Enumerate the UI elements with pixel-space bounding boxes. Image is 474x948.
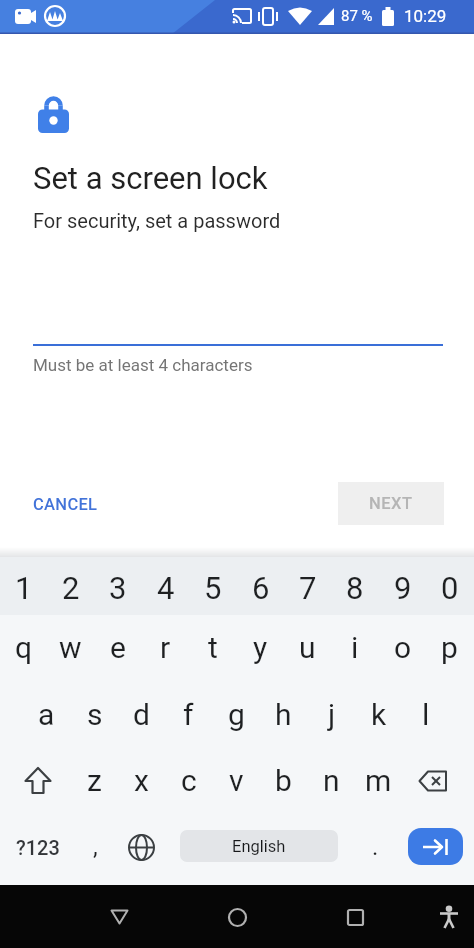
button[interactable]: NEXT <box>338 482 444 525</box>
button[interactable]: m <box>355 749 402 811</box>
button[interactable]: k <box>355 683 402 745</box>
staticText: p <box>441 630 458 665</box>
staticText: 5 <box>204 570 222 606</box>
button[interactable]: j <box>308 683 355 745</box>
staticText: d <box>133 697 150 732</box>
button[interactable]: g <box>213 683 260 745</box>
button[interactable]: i <box>331 616 378 678</box>
button[interactable]: 0 <box>426 562 473 614</box>
button[interactable]: v <box>213 749 260 811</box>
button[interactable]: s <box>71 683 118 745</box>
staticText: a <box>38 697 55 732</box>
staticText: w <box>59 630 82 665</box>
staticText: n <box>323 763 340 798</box>
staticText: 1 <box>15 570 33 606</box>
staticText: f <box>183 697 194 732</box>
staticText: k <box>371 697 387 732</box>
button[interactable]: t <box>189 616 236 678</box>
button[interactable]: f <box>165 683 212 745</box>
staticText: 3 <box>109 570 127 606</box>
button[interactable]: 5 <box>189 562 236 614</box>
button[interactable]: u <box>284 616 331 678</box>
button[interactable]: h <box>260 683 307 745</box>
button[interactable]: English <box>180 830 338 862</box>
staticText: . <box>372 833 379 861</box>
staticText: e <box>110 630 126 665</box>
button[interactable] <box>408 828 463 865</box>
staticText: For security, set a password <box>33 209 281 232</box>
button[interactable]: y <box>237 616 284 678</box>
button[interactable] <box>336 898 374 936</box>
button[interactable]: ?123 <box>10 820 66 875</box>
button[interactable]: 6 <box>237 562 284 614</box>
staticText: c <box>181 763 197 798</box>
button[interactable]: . <box>352 816 399 878</box>
button[interactable]: 7 <box>284 562 331 614</box>
button[interactable] <box>100 898 138 936</box>
staticText: 0 <box>441 570 459 606</box>
staticText: j <box>328 697 336 732</box>
button[interactable]: z <box>71 749 118 811</box>
staticText: Set a screen lock <box>33 160 268 196</box>
button[interactable]: r <box>142 616 189 678</box>
button[interactable]: o <box>379 616 426 678</box>
staticText: 87 % <box>341 7 373 25</box>
staticText: CANCEL <box>33 495 98 514</box>
staticText: z <box>87 763 102 798</box>
button[interactable]: q <box>0 616 47 678</box>
staticText: Must be at least 4 characters <box>33 355 253 375</box>
staticText: s <box>87 697 103 732</box>
button[interactable]: l <box>402 683 449 745</box>
staticText: l <box>422 697 430 732</box>
staticText: b <box>275 763 292 798</box>
staticText: ?123 <box>16 836 60 859</box>
staticText: 6 <box>252 570 270 606</box>
button[interactable]: 2 <box>47 562 94 614</box>
button[interactable]: 3 <box>94 562 141 614</box>
staticText: NEXT <box>369 494 413 513</box>
button[interactable]: c <box>165 749 212 811</box>
button[interactable] <box>430 898 468 936</box>
button[interactable]: b <box>260 749 307 811</box>
staticText: English <box>232 837 286 856</box>
button[interactable]: p <box>426 616 473 678</box>
staticText: , <box>93 833 98 861</box>
staticText: r <box>160 630 171 665</box>
staticText: 9 <box>394 570 412 606</box>
button[interactable]: 9 <box>379 562 426 614</box>
staticText: o <box>394 630 412 665</box>
button[interactable] <box>10 750 65 812</box>
button[interactable]: CANCEL <box>33 486 133 522</box>
staticText: h <box>275 697 292 732</box>
staticText: 2 <box>62 570 80 606</box>
staticText: v <box>229 763 244 798</box>
staticText: 4 <box>157 570 175 606</box>
staticText: q <box>15 630 33 665</box>
button[interactable] <box>118 820 164 875</box>
button[interactable]: a <box>23 683 70 745</box>
button[interactable]: w <box>47 616 94 678</box>
staticText: 7 <box>299 570 317 606</box>
staticText: x <box>134 763 149 798</box>
staticText: t <box>208 630 218 665</box>
button[interactable] <box>403 750 463 812</box>
button[interactable]: d <box>118 683 165 745</box>
button[interactable] <box>218 898 256 936</box>
staticText: 10:29 <box>404 6 447 26</box>
staticText: m <box>365 763 392 798</box>
button[interactable]: , <box>72 816 119 878</box>
button[interactable]: x <box>118 749 165 811</box>
button[interactable]: 1 <box>0 562 47 614</box>
button[interactable]: 8 <box>331 562 378 614</box>
staticText: 8 <box>346 570 364 606</box>
button[interactable]: n <box>308 749 355 811</box>
staticText: y <box>253 630 268 665</box>
staticText: g <box>228 697 245 732</box>
button[interactable]: 4 <box>142 562 189 614</box>
button[interactable]: e <box>94 616 141 678</box>
staticText: i <box>351 630 359 665</box>
staticText: u <box>299 630 316 665</box>
